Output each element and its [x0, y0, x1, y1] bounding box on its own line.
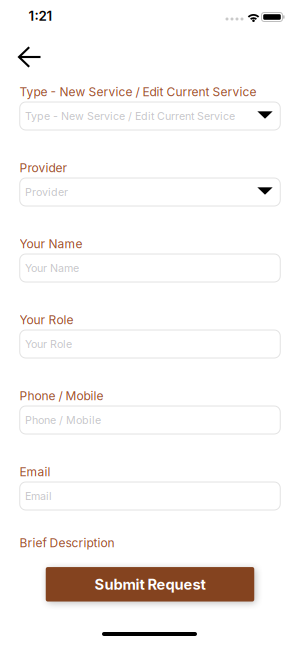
staticText: Your Role	[25, 338, 72, 350]
staticText: Provider	[25, 186, 68, 198]
staticText: Your Name	[25, 262, 79, 274]
staticText: Provider	[19, 161, 67, 175]
button[interactable]: Email	[20, 482, 280, 510]
button[interactable]: Your Role	[20, 330, 280, 358]
staticText: Email	[25, 490, 52, 502]
button[interactable]: Phone / Mobile	[20, 406, 280, 434]
staticText: Email	[19, 465, 50, 479]
staticText: Your Role	[19, 313, 73, 327]
button[interactable]: Your Name	[20, 254, 280, 282]
button[interactable]: Provider	[20, 178, 280, 206]
button[interactable]: Back	[19, 47, 40, 67]
staticText: Your Name	[19, 237, 82, 251]
staticText: 1:21	[28, 8, 52, 24]
staticText: Type - New Service / Edit Current Servic…	[19, 85, 256, 99]
button[interactable]: Type - New Service / Edit Current Servic…	[20, 102, 280, 130]
staticText: Phone / Mobile	[19, 389, 103, 403]
staticText: Brief Description	[19, 536, 114, 550]
staticText: Submit Request	[94, 576, 205, 593]
button[interactable]: Submit Request	[46, 567, 254, 601]
staticText: Phone / Mobile	[25, 414, 101, 426]
staticText: Type - New Service / Edit Current Servic…	[25, 110, 235, 122]
